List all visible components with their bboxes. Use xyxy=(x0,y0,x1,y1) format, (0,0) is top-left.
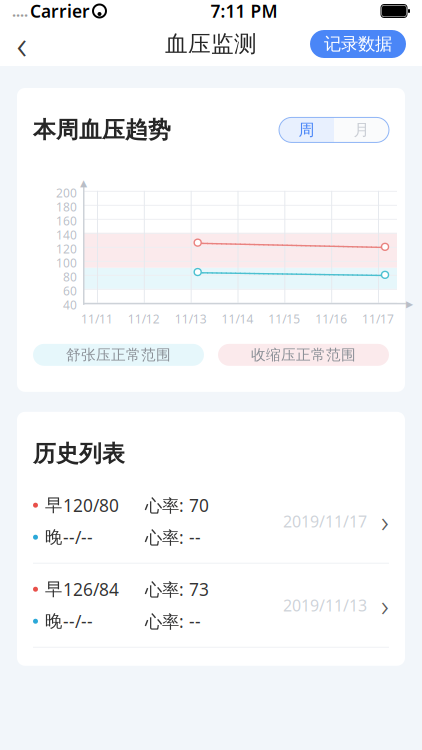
staticText: --/-- xyxy=(63,610,93,633)
staticText: 心率: 73 xyxy=(145,578,209,601)
staticText: 60 xyxy=(63,283,77,299)
staticText: 11/17 xyxy=(362,311,394,327)
staticText: 周 xyxy=(298,120,314,140)
staticText: .... xyxy=(12,1,28,21)
staticText: › xyxy=(381,502,389,541)
staticText: ‹ xyxy=(16,17,27,70)
staticText: 160 xyxy=(56,213,77,229)
button[interactable]: 周 xyxy=(279,117,334,142)
staticText: 11/13 xyxy=(175,311,207,327)
staticText: › xyxy=(381,586,389,625)
staticText: 晚 xyxy=(45,611,62,632)
button[interactable]: 早 xyxy=(33,564,389,647)
staticText: 本周血压趋势 xyxy=(33,116,171,144)
staticText: 40 xyxy=(63,297,77,313)
staticText: 心率: -- xyxy=(145,526,201,549)
staticText: 心率: -- xyxy=(145,610,201,633)
button[interactable]: 月 xyxy=(334,117,389,142)
staticText: 早 xyxy=(45,494,62,516)
staticText: 80 xyxy=(63,269,77,285)
staticText: 血压监测 xyxy=(165,30,257,58)
staticText: 100 xyxy=(56,255,77,271)
staticText: 120/80 xyxy=(63,494,119,517)
staticText: ▲ xyxy=(80,178,87,188)
staticText: 舒张压正常范围 xyxy=(66,346,171,364)
staticText: 记录数据 xyxy=(324,33,392,55)
staticText: 11/11 xyxy=(81,311,113,327)
staticText: 120 xyxy=(56,241,77,257)
staticText: 收缩压正常范围 xyxy=(251,346,356,364)
staticText: 140 xyxy=(56,227,77,243)
staticText: 11/14 xyxy=(221,311,253,327)
staticText: 7:11 PM xyxy=(210,0,277,22)
staticText: 11/15 xyxy=(268,311,300,327)
staticText: 11/16 xyxy=(315,311,347,327)
staticText: 180 xyxy=(56,199,77,215)
button[interactable]: 早 xyxy=(33,480,389,563)
staticText: 11/12 xyxy=(128,311,160,327)
staticText: 126/84 xyxy=(63,578,119,601)
staticText: 月 xyxy=(353,120,369,140)
button[interactable]: Back xyxy=(0,22,44,66)
staticText: 晚 xyxy=(45,527,62,548)
staticText: 心率: 70 xyxy=(145,494,209,517)
staticText: --/-- xyxy=(63,526,93,549)
staticText: 2019/11/17 xyxy=(283,511,367,532)
staticText: 历史列表 xyxy=(33,440,125,468)
staticText: 2019/11/13 xyxy=(283,595,367,616)
staticText: 200 xyxy=(56,185,77,201)
staticText: 早 xyxy=(45,579,62,600)
staticText: ▶ xyxy=(406,299,413,309)
button[interactable]: 记录数据 xyxy=(310,30,406,58)
staticText: Carrier xyxy=(30,0,90,22)
